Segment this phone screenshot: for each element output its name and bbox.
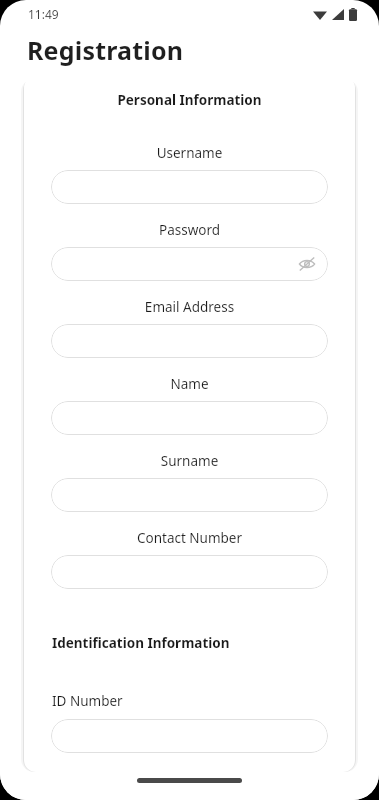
staticText: Email Address [24,298,355,316]
staticText: Username [24,144,355,162]
staticText: ID Number [52,692,123,710]
staticText: Registration [27,33,184,67]
button[interactable] [51,401,328,435]
button[interactable] [51,170,328,204]
button[interactable]: Show password [51,247,328,281]
staticText: Personal Information [24,91,355,109]
staticText: Contact Number [24,529,355,547]
staticText: Surname [24,452,355,470]
button[interactable] [51,719,328,753]
staticText: Name [24,375,355,393]
button[interactable] [51,324,328,358]
staticText: Password [24,221,355,239]
staticText: Identification Information [52,634,230,652]
button[interactable] [51,478,328,512]
button[interactable] [51,555,328,589]
staticText: 11:49 [28,6,59,22]
button[interactable]: Show password [296,253,318,275]
